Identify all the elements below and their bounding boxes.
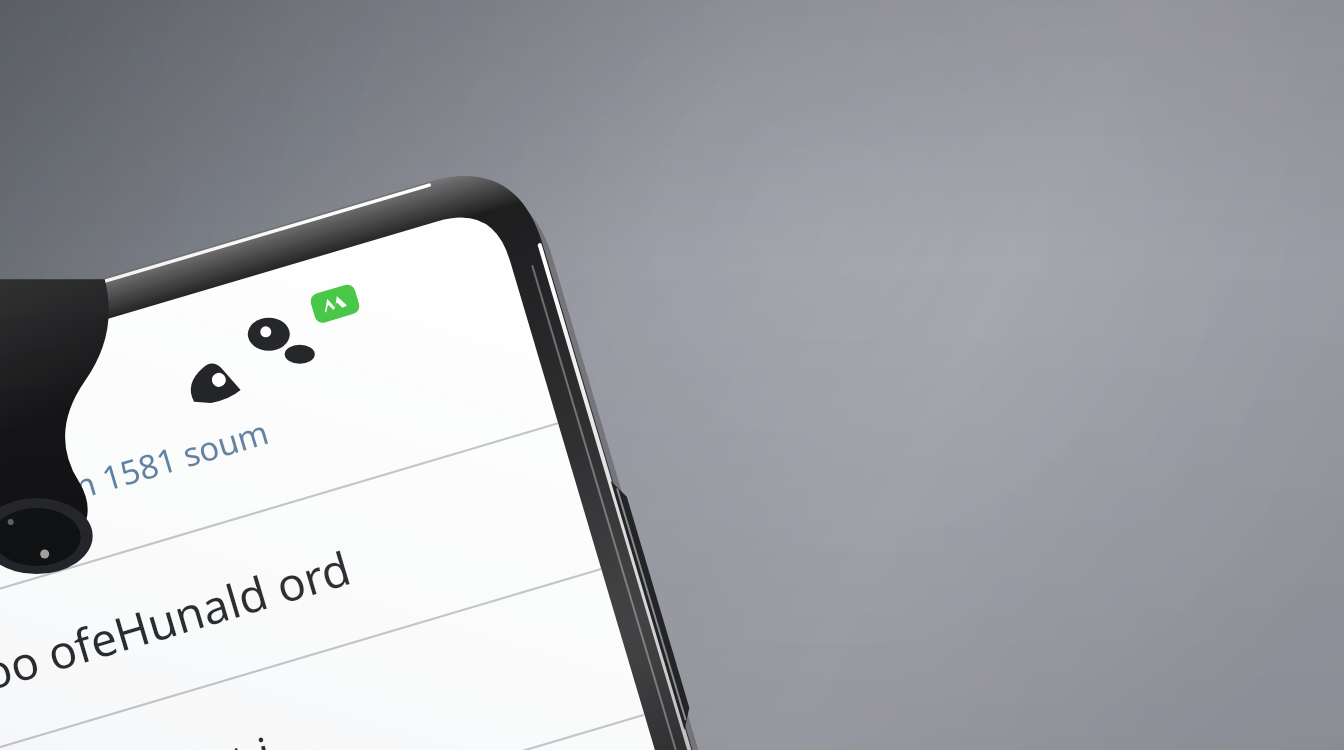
button[interactable]: Phone showing a list screen [0, 0, 1344, 750]
